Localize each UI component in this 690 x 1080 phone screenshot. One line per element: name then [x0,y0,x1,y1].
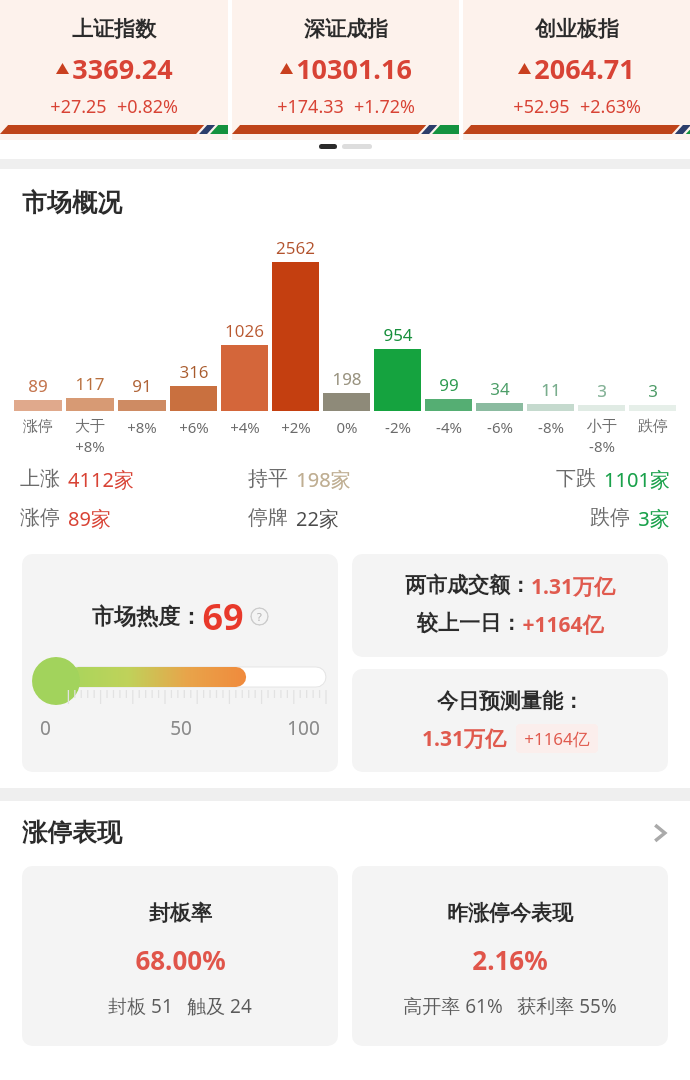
staticText: 1.31万亿 [422,724,506,753]
staticText: 下跌 [556,466,596,491]
staticText: 89 [28,374,48,397]
staticText: 持平 [248,466,288,491]
staticText: +4% [230,417,260,437]
staticText: +52.95 [513,94,570,119]
staticText: 2562 [276,236,315,259]
staticText: +27.25 [50,94,107,119]
staticText: 昨涨停今表现 [447,900,573,926]
button[interactable]: 涨停表现 [0,817,690,848]
staticText: +2.63% [580,94,641,119]
staticText: 11 [541,378,561,401]
staticText: 今日预测量能： [437,688,584,714]
button[interactable]: 上证指数 [0,0,228,140]
staticText: 触及 24 [187,993,252,1019]
staticText: +6% [179,417,209,437]
staticText: 1.31万亿 [531,572,615,601]
staticText: 91 [132,374,152,397]
staticText: -6% [487,417,513,437]
staticText: 3 [597,379,607,402]
staticText: +8% [75,436,105,456]
staticText: 1026 [225,319,264,342]
staticText: +2% [281,417,311,437]
staticText: 封板率 [149,900,212,926]
staticText: 50 [170,715,192,741]
staticText: 小于 [587,417,617,436]
staticText: 涨停表现 [22,817,122,848]
staticText: -8% [589,436,615,456]
staticText: 上证指数 [72,16,156,42]
staticText: 2064.71 [534,50,635,87]
staticText: 3369.24 [72,50,173,87]
staticText: +174.33 [277,94,344,119]
staticText: 34 [490,377,510,400]
staticText: 4112家 [68,466,134,493]
staticText: 封板 51 [108,993,173,1019]
staticText: 100 [287,715,320,741]
staticText: -8% [538,417,564,437]
button[interactable]: 创业板指 [463,0,690,140]
staticText: 2.16% [472,942,548,977]
staticText: 69 [202,592,244,641]
staticText: 停牌 [248,505,288,530]
button[interactable]: 帮助 [250,607,269,626]
staticText: 上涨 [20,466,60,491]
staticText: 68.00% [135,942,226,977]
staticText: 99 [439,373,459,396]
staticText: 深证成指 [304,16,388,42]
staticText: 3家 [638,505,670,532]
staticText: 高开率 61% [403,993,503,1019]
staticText: +1164亿 [522,610,604,639]
staticText: 1101家 [604,466,670,493]
staticText: 两市成交额： [405,572,531,598]
staticText: -2% [385,417,411,437]
staticText: 涨停 [20,505,60,530]
staticText: +0.82% [117,94,178,119]
button[interactable]: 今日预测量能： [352,669,668,772]
button[interactable]: 市场热度： [22,554,338,772]
staticText: 198家 [296,466,351,493]
staticText: 市场概况 [22,187,122,218]
staticText: 涨停 [23,417,53,436]
staticText: +8% [127,417,157,437]
staticText: -4% [436,417,462,437]
staticText: 954 [383,323,413,346]
staticText: 0% [336,417,358,437]
staticText: +1.72% [354,94,415,119]
staticText: 跌停 [590,505,630,530]
staticText: 大于 [75,417,105,436]
staticText: 跌停 [638,417,668,436]
staticText: 198 [332,367,362,390]
staticText: 获利率 55% [517,993,617,1019]
button[interactable]: 昨涨停今表现 [352,866,668,1046]
staticText: +1164亿 [524,727,590,750]
staticText: 市场热度： [92,603,202,631]
other: 更多 [652,820,668,846]
button[interactable]: 深证成指 [232,0,459,140]
staticText: 117 [75,372,105,395]
button[interactable]: 两市成交额： [352,554,668,657]
staticText: ? [257,609,262,624]
staticText: 3 [648,379,658,402]
staticText: 创业板指 [535,16,619,42]
staticText: 较上一日： [417,610,522,636]
staticText: 10301.16 [296,50,412,87]
staticText: 0 [40,715,51,741]
button[interactable]: 封板率 [22,866,338,1046]
staticText: 89家 [68,505,111,532]
staticText: 22家 [296,505,339,532]
staticText: 316 [179,360,209,383]
